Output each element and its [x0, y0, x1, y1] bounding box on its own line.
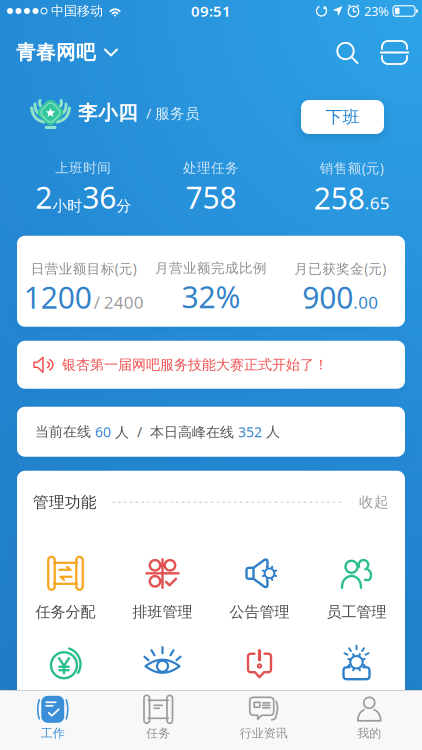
staticText: 1200 — [24, 277, 92, 317]
staticText: 任务 — [146, 726, 170, 740]
button[interactable]: 青春网吧 — [16, 40, 118, 64]
staticText: 销售额(元) — [320, 159, 384, 177]
staticText: / 2400 — [94, 291, 144, 314]
button[interactable]: 公告管理 — [211, 555, 308, 621]
button[interactable]: 收银管理 — [17, 645, 114, 712]
staticText: 处理任务 — [183, 160, 239, 176]
button[interactable]: 行业资讯 — [211, 695, 316, 740]
button[interactable]: 排班管理 — [114, 555, 211, 621]
staticText: 2小时36分 — [35, 177, 131, 217]
staticText: 任务分配 — [35, 603, 95, 621]
staticText: 当前在线 — [35, 423, 95, 440]
staticText: 09:51 — [191, 1, 231, 21]
button[interactable]: 系统设置 — [308, 645, 405, 712]
button[interactable]: 下班 — [301, 100, 384, 134]
button[interactable]: 任务分配 — [17, 555, 114, 621]
staticText: 我的 — [357, 726, 381, 740]
staticText: 900 — [302, 277, 353, 317]
staticText: 月营业额完成比例 — [155, 260, 267, 277]
staticText: 60 — [95, 422, 111, 441]
button[interactable]: 收起 — [359, 493, 389, 511]
staticText: 日营业额目标(元) — [31, 259, 137, 277]
button[interactable]: 客服电话 — [211, 645, 308, 712]
button[interactable]: 员工管理 — [308, 555, 405, 621]
button[interactable]: 搜索 — [335, 40, 359, 64]
staticText: 工作 — [41, 726, 65, 740]
button[interactable]: 扫一扫 — [380, 40, 409, 64]
staticText: 758 — [185, 177, 236, 217]
staticText: 人 — [262, 423, 280, 440]
staticText: 下班 — [325, 107, 359, 127]
staticText: 李小四 — [78, 101, 138, 125]
staticText: 监控管理 — [132, 693, 192, 712]
staticText: 月已获奖金(元) — [294, 259, 386, 277]
staticText: 公告管理 — [229, 603, 289, 621]
staticText: 上班时间 — [55, 160, 111, 176]
button[interactable]: 我的 — [316, 695, 422, 740]
staticText: 258.65 — [314, 178, 390, 218]
staticText: .00 — [353, 291, 378, 314]
button[interactable]: 监控管理 — [114, 645, 211, 712]
staticText: 352 — [238, 422, 262, 441]
staticText: 青春网吧 — [16, 40, 96, 64]
staticText: 排班管理 — [132, 603, 192, 621]
staticText: 系统设置 — [326, 693, 386, 712]
staticText: 中国移动 — [51, 3, 103, 19]
staticText: / 服务员 — [142, 103, 200, 123]
button[interactable]: 任务 — [105, 695, 211, 740]
staticText: 32% — [181, 277, 240, 316]
staticText: 收银管理 — [35, 693, 95, 712]
staticText: 行业资讯 — [240, 726, 288, 740]
staticText: 人 / 本日高峰在线 — [111, 422, 238, 441]
staticText: 银杏第一届网吧服务技能大赛正式开始了！ — [62, 356, 328, 373]
staticText: 管理功能 — [33, 493, 97, 512]
staticText: 收起 — [359, 493, 389, 511]
button[interactable]: 工作 — [0, 695, 105, 740]
staticText: 员工管理 — [326, 603, 386, 621]
staticText: 客服电话 — [229, 693, 289, 712]
button[interactable]: 银杏第一届网吧服务技能大赛正式开始了！ — [17, 341, 405, 389]
staticText: 23% — [364, 2, 389, 20]
